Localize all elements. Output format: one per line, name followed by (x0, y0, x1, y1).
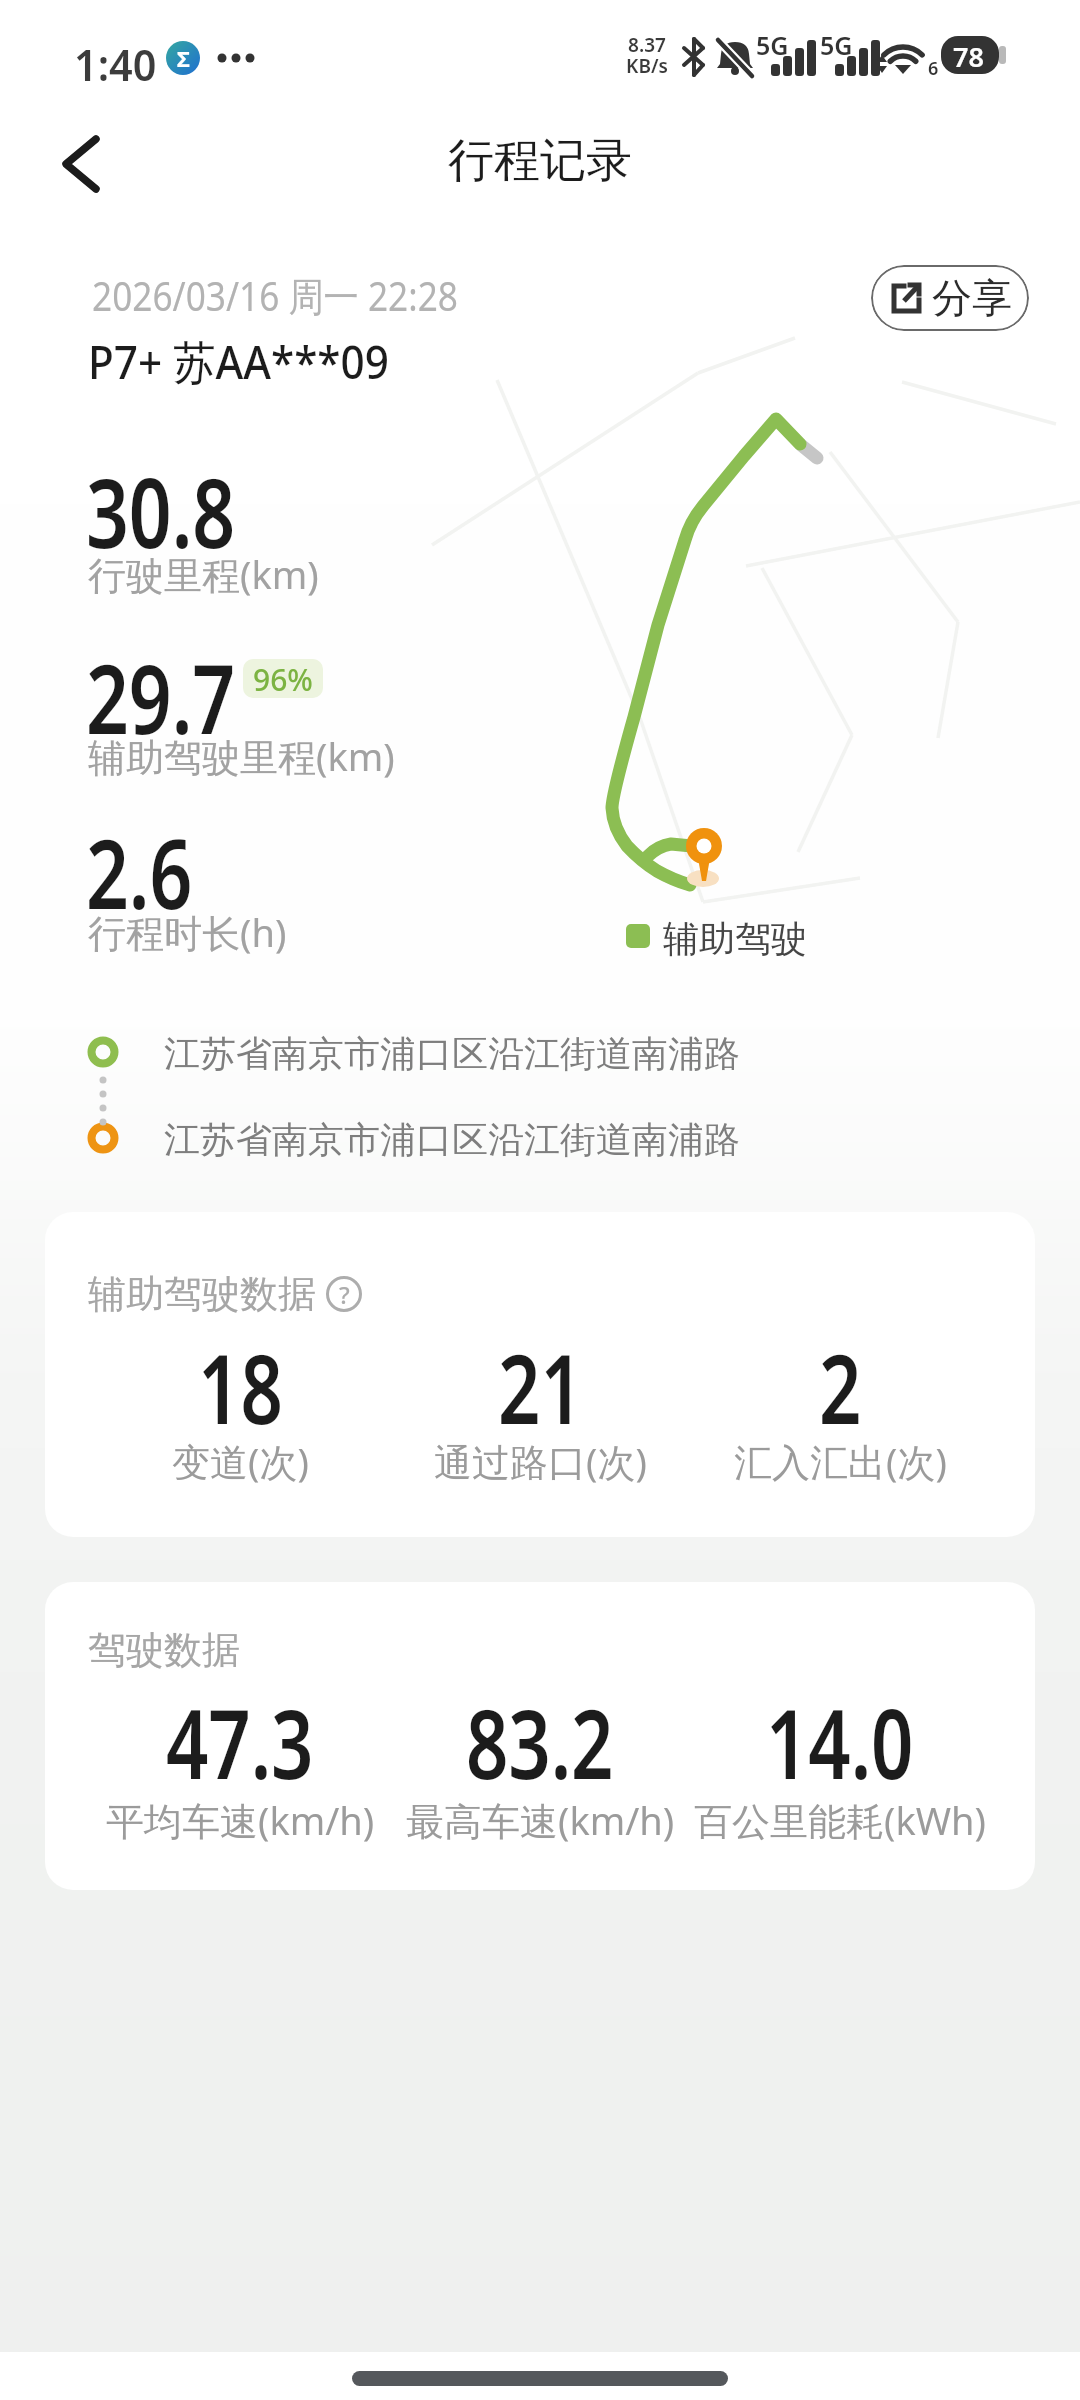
staticText: 47.3 (166, 1677, 314, 1806)
staticText: 6 (928, 56, 939, 81)
staticText: Σ (177, 43, 190, 73)
staticText: 最高车速(km/h) (406, 1794, 675, 1846)
staticText: 通过路口(次) (434, 1435, 647, 1487)
staticText: 21 (498, 1322, 583, 1451)
staticText: 29.7 (86, 631, 236, 762)
staticText: 汇入汇出(次) (734, 1435, 947, 1487)
staticText: 驾驶数据 (88, 1626, 240, 1674)
staticText: 5G (820, 28, 853, 62)
staticText: 2 (819, 1322, 862, 1451)
staticText: 辅助驾驶 (663, 916, 807, 961)
staticText: 行驶里程(km) (88, 548, 319, 600)
staticText: 14.0 (766, 1677, 914, 1806)
staticText: 8.37 KB/s (626, 32, 668, 79)
staticText: 18 (198, 1322, 283, 1451)
staticText: 分享 (932, 273, 1012, 323)
staticText: ? (339, 1278, 350, 1311)
staticText: 辅助驾驶数据 (88, 1270, 316, 1318)
staticText: 96% (253, 659, 313, 698)
staticText: 百公里能耗(kWh) (694, 1794, 986, 1846)
staticText: 30.8 (86, 445, 236, 576)
staticText: 5G (756, 28, 789, 62)
staticText: 行程时长(h) (88, 906, 287, 958)
staticText: 江苏省南京市浦口区沿江街道南浦路 (164, 1031, 740, 1076)
staticText: 辅助驾驶里程(km) (88, 730, 395, 782)
staticText: 行程记录 (448, 132, 632, 190)
staticText: 变道(次) (172, 1435, 309, 1487)
staticText: 1:40 (74, 34, 157, 94)
staticText: P7+ 苏AA***09 (88, 330, 390, 393)
staticText: 2026/03/16 周一 22:28 (92, 268, 458, 323)
staticText: 平均车速(km/h) (106, 1794, 375, 1846)
staticText: 2.6 (86, 806, 193, 937)
staticText: 78 (953, 38, 984, 75)
staticText: 江苏省南京市浦口区沿江街道南浦路 (164, 1117, 740, 1162)
staticText: 83.2 (466, 1677, 614, 1806)
